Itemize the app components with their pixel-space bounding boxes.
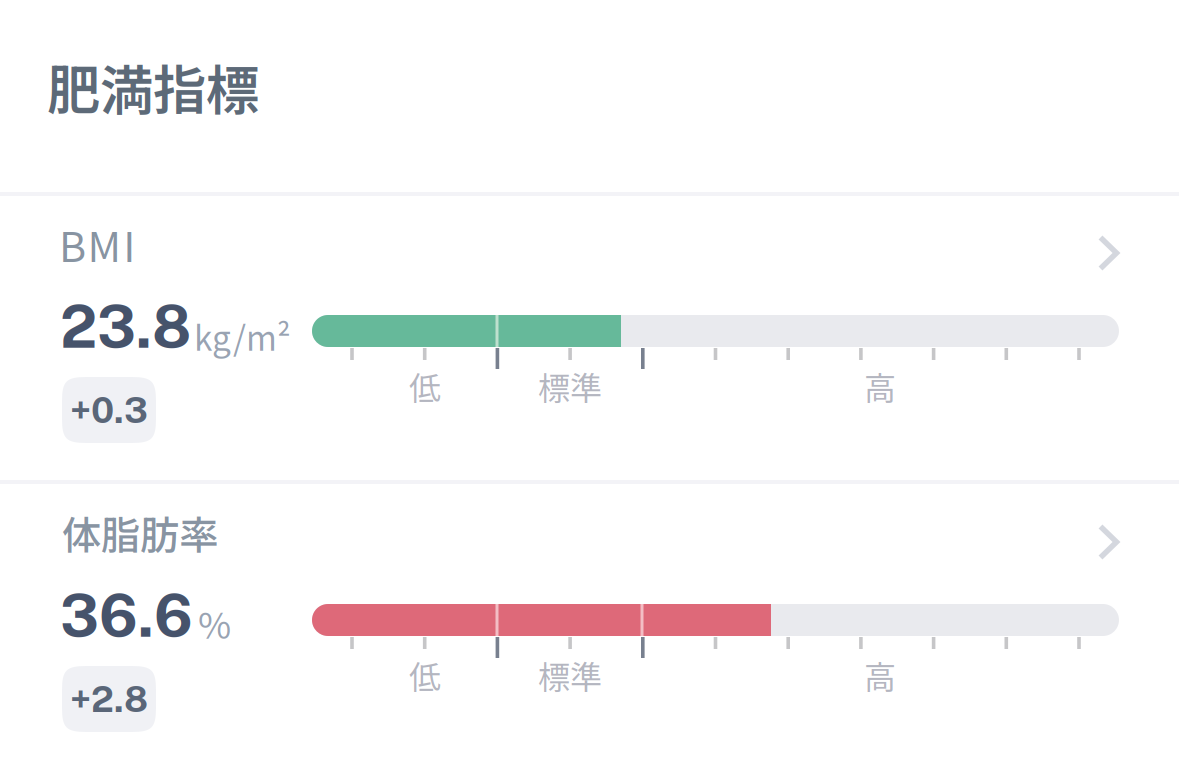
staticText: 肥満指標 [47,48,259,125]
staticText: 低 [409,652,441,698]
staticText: 低 [409,363,441,409]
staticText: 標準 [538,363,602,409]
staticText: 36.6 [60,581,193,650]
staticText: BMI [59,214,135,274]
staticText: +0.3 [70,389,148,431]
staticText: +2.8 [70,678,148,720]
staticText: 高 [864,363,896,409]
staticText: 標準 [538,652,602,698]
staticText: 23.8 [60,292,191,361]
button[interactable]: BMI [0,192,1179,481]
staticText: 体脂肪率 [62,504,218,561]
staticText: kg/m² [194,312,291,360]
staticText: % [198,597,231,649]
staticText: 高 [864,652,896,698]
button[interactable]: 体脂肪率 [0,481,1179,762]
